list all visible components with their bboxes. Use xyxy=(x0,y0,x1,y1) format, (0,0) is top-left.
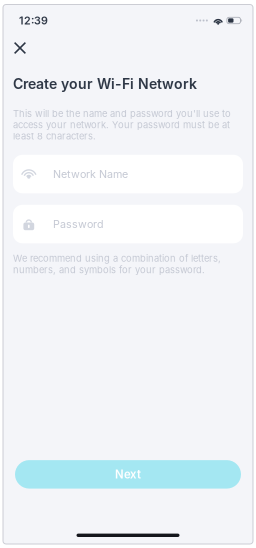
staticText: We recommend using a combination of lett… xyxy=(13,253,221,275)
staticText: Network Name xyxy=(53,168,128,180)
button[interactable]: Close xyxy=(10,38,30,58)
button[interactable]: Next xyxy=(15,460,241,489)
staticText: 12:39 xyxy=(19,14,48,27)
staticText: Password xyxy=(53,218,104,230)
staticText: This will be the name and password you'l… xyxy=(13,108,231,142)
staticText: Create your Wi-Fi Network xyxy=(13,75,197,92)
staticText: Next xyxy=(115,467,141,481)
